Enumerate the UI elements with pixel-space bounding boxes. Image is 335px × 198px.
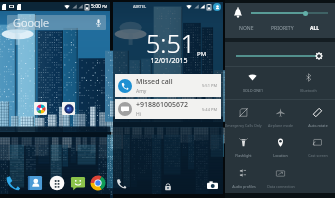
staticText: Cast screen	[308, 153, 328, 158]
button[interactable]: App	[62, 102, 75, 115]
staticText: 5:51 PM	[202, 83, 218, 88]
button[interactable]: Chrome	[89, 174, 107, 192]
button[interactable]: Airplane mode	[262, 105, 299, 134]
button[interactable]: Emergency Calls Only	[225, 105, 262, 134]
staticText: ALL	[310, 25, 320, 32]
staticText: Hi	[136, 111, 141, 118]
button[interactable]: Interruptions	[232, 7, 244, 19]
button[interactable]: Missed call	[115, 74, 221, 97]
button[interactable]: Brightness settings	[315, 52, 323, 60]
staticText: Google	[13, 15, 50, 28]
staticText: Data connection	[267, 184, 295, 189]
button[interactable]: Bluetooth	[280, 70, 335, 99]
button[interactable]: Phone	[4, 174, 22, 192]
staticText: NONE	[239, 25, 254, 32]
button[interactable]: +918861005672	[115, 99, 221, 119]
button[interactable]: PRIORITY	[263, 22, 301, 34]
staticText: PM	[102, 4, 108, 9]
button[interactable]: Phone	[116, 178, 127, 189]
other: Voice search	[96, 19, 101, 27]
button[interactable]: XOLO ONE1	[225, 70, 280, 99]
staticText: XOLO ONE1	[243, 88, 263, 93]
staticText: Emergency Calls Only	[225, 123, 262, 128]
staticText: Auto-rotate	[308, 123, 328, 128]
staticText: Flashlight	[235, 153, 252, 158]
staticText: Location	[273, 153, 288, 158]
staticText: 12/01/2015	[114, 56, 224, 66]
staticText: Missed call	[136, 77, 173, 87]
button[interactable]: Apps	[48, 174, 66, 192]
staticText: Airplane mode	[268, 123, 293, 128]
staticText: Bluetooth	[300, 88, 317, 93]
staticText: Audio profiles	[232, 184, 256, 189]
staticText: +918861005672	[136, 100, 189, 110]
staticText: 5:51	[146, 26, 195, 60]
button[interactable]: Location	[262, 135, 299, 164]
button[interactable]: NONE	[229, 22, 263, 34]
button[interactable]: ALL	[301, 22, 329, 34]
button[interactable]: Flashlight	[225, 135, 262, 164]
staticText: PRIORITY	[271, 25, 294, 32]
staticText: 5:00	[91, 3, 101, 10]
staticText: 5:44 PM	[202, 107, 218, 112]
button[interactable]: Google	[7, 15, 106, 30]
staticText: PM	[197, 50, 207, 58]
button[interactable]: App	[34, 102, 47, 115]
button[interactable]: Auto-rotate	[299, 105, 335, 134]
staticText: AIRTEL	[133, 4, 147, 9]
button[interactable]: Contacts	[26, 174, 44, 192]
button[interactable]: Cast screen	[299, 135, 335, 164]
button[interactable]: Messaging	[69, 174, 87, 192]
button[interactable]: Unlock	[164, 183, 172, 191]
staticText: Amy	[136, 88, 147, 95]
button[interactable]: Audio profiles	[225, 166, 262, 195]
button[interactable]: Camera	[207, 180, 218, 191]
button[interactable]: Data connection	[262, 166, 299, 195]
